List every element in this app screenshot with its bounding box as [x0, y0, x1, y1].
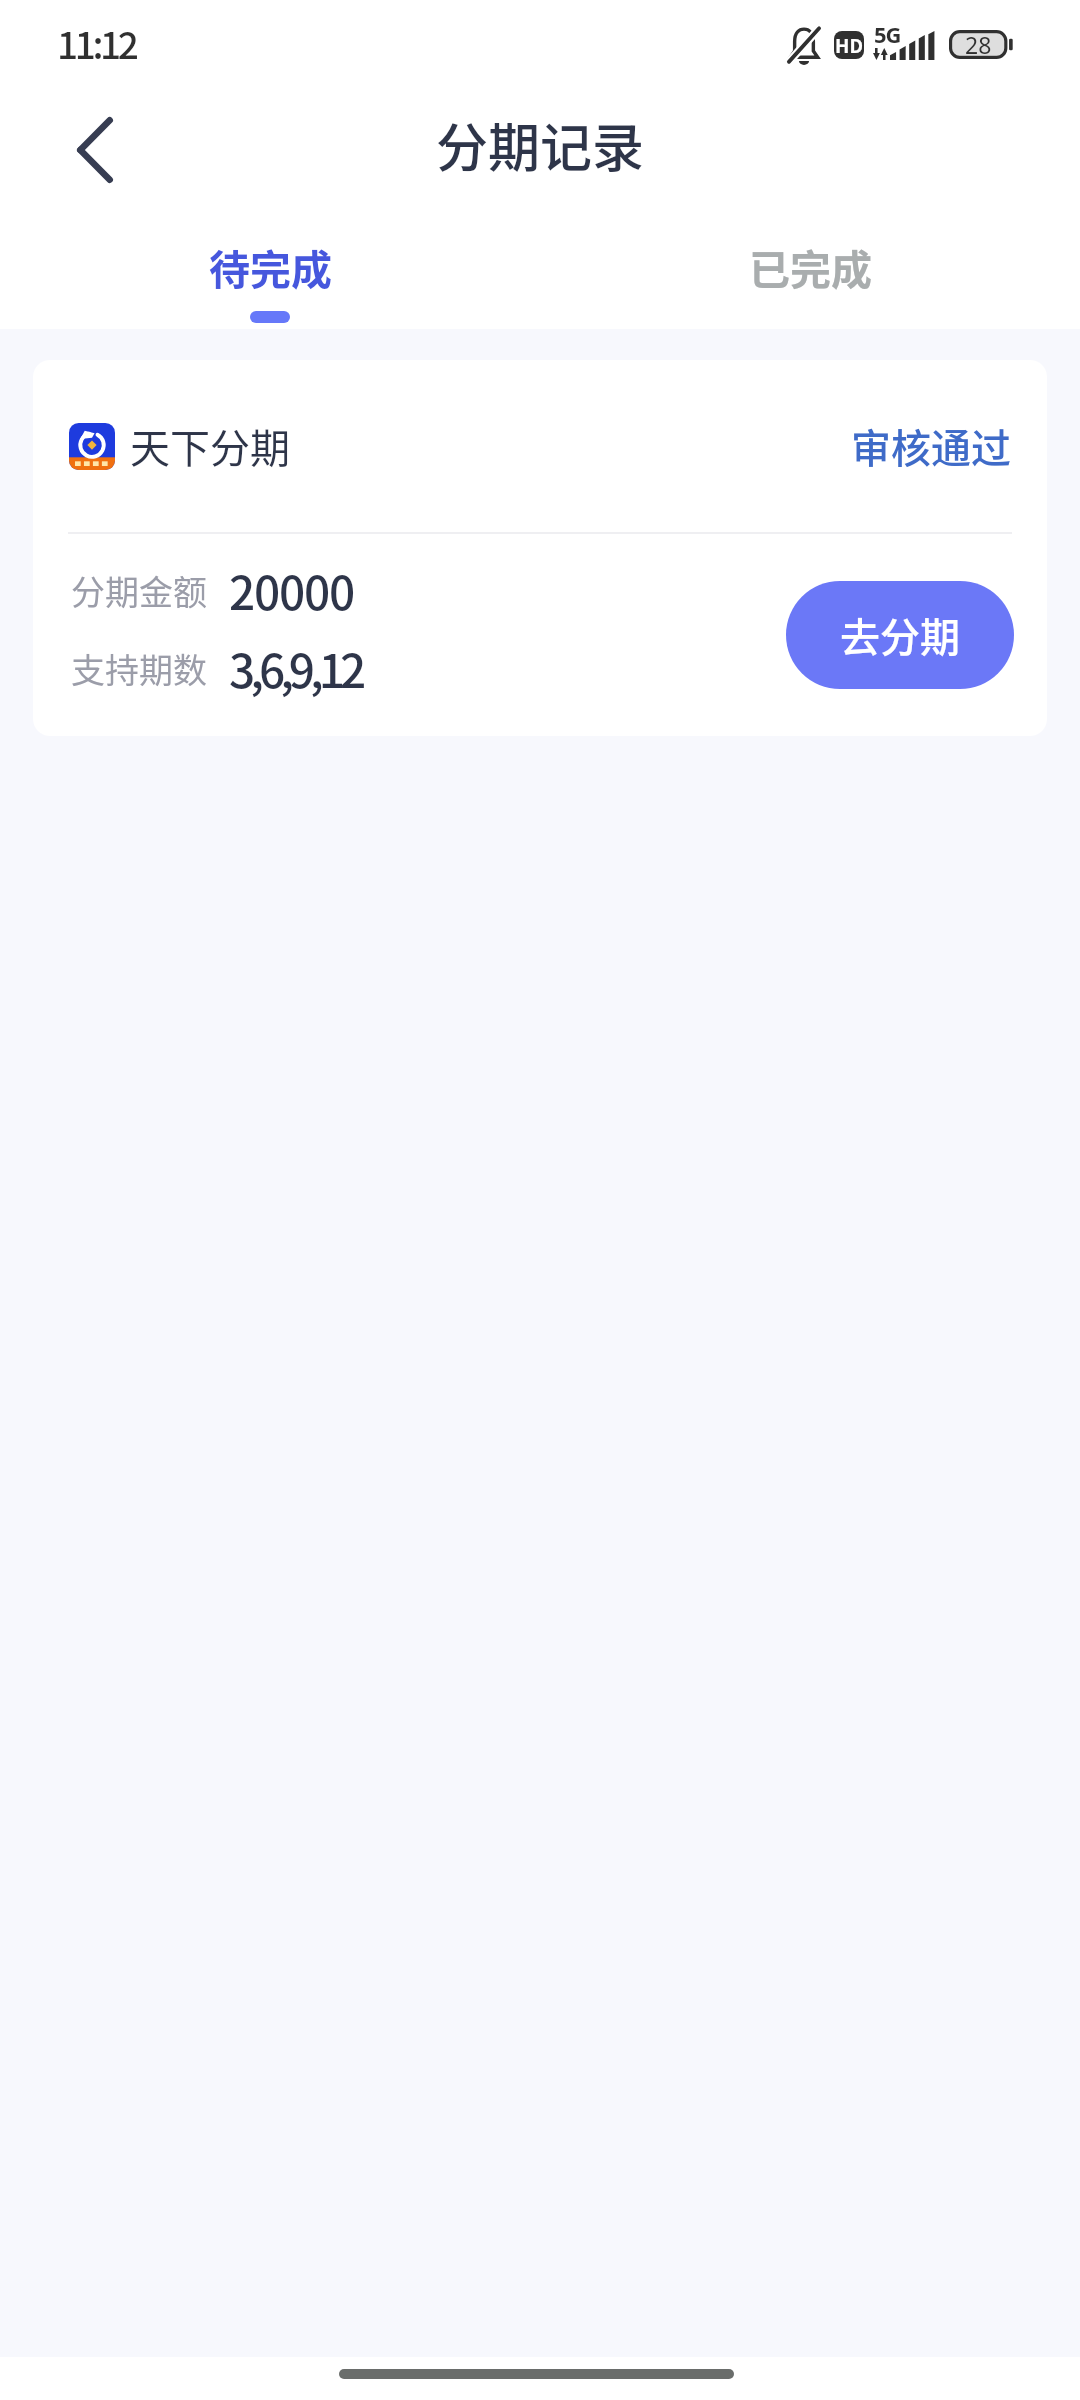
staticText: 支持期数 [71, 644, 207, 693]
staticText: HD [835, 31, 863, 59]
staticText: 28 [965, 29, 992, 60]
button[interactable]: 待完成 [0, 218, 540, 329]
staticText: 分期记录 [436, 107, 645, 182]
staticText: 3,6,9,12 [229, 635, 362, 702]
staticText: 天下分期 [130, 417, 290, 475]
staticText: 审核通过 [851, 417, 1011, 475]
staticText: 20000 [229, 557, 355, 624]
button[interactable]: 天下分期 [33, 360, 1047, 736]
staticText: 11:12 [57, 16, 136, 70]
staticText: 分期金额 [71, 566, 207, 615]
staticText: 待完成 [209, 237, 332, 296]
button[interactable]: 去分期 [786, 581, 1014, 689]
button[interactable]: Back [57, 112, 133, 188]
staticText: 已完成 [749, 237, 872, 296]
staticText: 去分期 [840, 606, 960, 664]
staticText: 5G [874, 19, 901, 49]
button[interactable]: 已完成 [540, 218, 1080, 329]
